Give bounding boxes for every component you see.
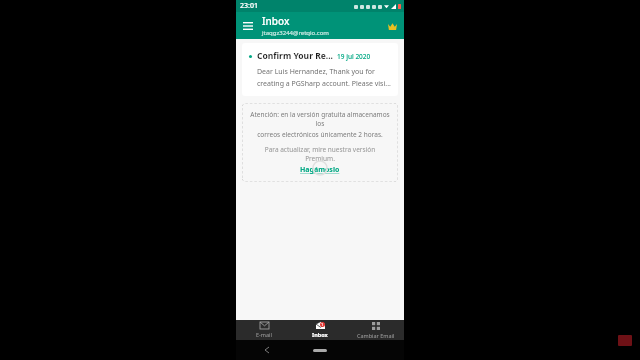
button[interactable]: Cambiar Email xyxy=(348,320,404,340)
button[interactable]: Atención: en la versión gratuita almacen… xyxy=(242,103,398,182)
staticText: jtaqgz3244@retqio.com xyxy=(262,29,329,37)
staticText: Inbox xyxy=(312,331,328,338)
staticText: 1 xyxy=(321,322,324,327)
staticText: creating a PGSharp account. Please visi.… xyxy=(257,79,391,89)
staticText: 23:01 xyxy=(240,1,258,11)
button[interactable]: Confirm Your Re... xyxy=(242,43,398,96)
staticText: Inbox xyxy=(262,14,290,28)
button[interactable]: 1 xyxy=(292,320,348,340)
staticText: E-mail xyxy=(256,331,272,338)
staticText: Confirm Your Re... xyxy=(257,50,333,62)
staticText: Hagámoslo xyxy=(300,165,340,175)
staticText: Dear Luis Hernandez, Thank you for xyxy=(257,67,375,77)
button[interactable]: E-mail xyxy=(236,320,292,340)
button[interactable]: Premium xyxy=(384,18,400,34)
button[interactable]: Back xyxy=(262,345,272,355)
staticText: Cambiar Email xyxy=(357,332,395,339)
button[interactable]: Home xyxy=(313,349,327,352)
staticText: Para actualizar, mire nuestra versión Pr… xyxy=(250,145,390,163)
button[interactable]: Open navigation menu xyxy=(239,17,257,35)
staticText: correos electrónicos únicamente 2 horas. xyxy=(257,130,383,139)
button[interactable]: Hagámoslo xyxy=(300,165,340,175)
staticText: Atención: en la versión gratuita almacen… xyxy=(250,110,390,128)
staticText: 19 jul 2020 23:01:36 xyxy=(337,52,391,61)
